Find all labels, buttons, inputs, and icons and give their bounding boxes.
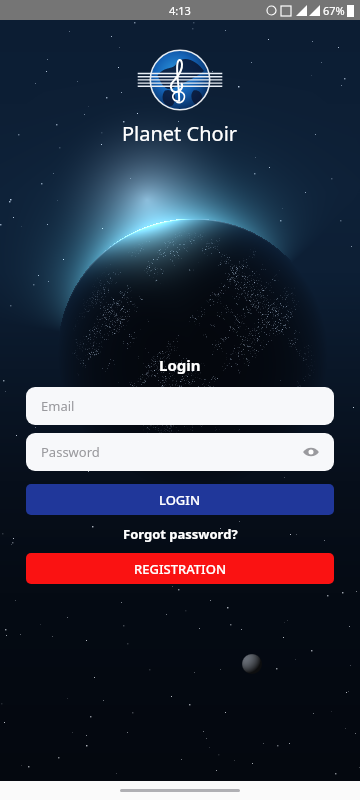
button[interactable]: REGISTRATION xyxy=(26,553,334,584)
staticText: Email xyxy=(41,397,75,415)
button[interactable]: Forgot password? xyxy=(123,525,238,543)
button[interactable]: LOGIN xyxy=(26,484,334,515)
button[interactable]: Show password xyxy=(302,443,320,461)
button[interactable]: Email xyxy=(26,387,334,425)
staticText: LOGIN xyxy=(159,491,201,509)
button[interactable]: Password xyxy=(26,433,334,471)
staticText: REGISTRATION xyxy=(134,560,226,578)
staticText: Password xyxy=(41,443,100,461)
staticText: Login xyxy=(159,355,201,375)
staticText: Planet Choir xyxy=(122,120,238,147)
staticText: 4:13 xyxy=(169,3,191,18)
staticText: 67% xyxy=(323,3,345,18)
